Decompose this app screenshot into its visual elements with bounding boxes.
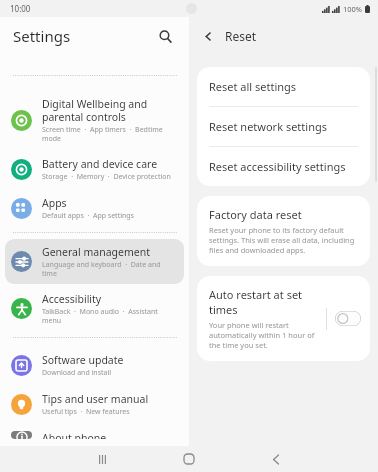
staticText: About phone bbox=[42, 431, 107, 439]
button[interactable]: Digital Wellbeing and parental controls bbox=[5, 91, 184, 149]
staticText: Default apps · App settings bbox=[42, 211, 134, 221]
staticText: Factory data reset bbox=[209, 207, 302, 222]
button[interactable]: Factory data reset bbox=[197, 196, 370, 266]
button[interactable]: Recent apps bbox=[84, 446, 120, 472]
button[interactable]: Back bbox=[197, 25, 219, 47]
staticText: Reset all settings bbox=[209, 79, 297, 94]
staticText: Reset bbox=[225, 28, 257, 44]
staticText: General management bbox=[42, 245, 150, 259]
button[interactable]: Reset all settings bbox=[197, 67, 370, 106]
staticText: Digital Wellbeing and parental controls bbox=[42, 97, 176, 124]
button[interactable]: Software update bbox=[5, 347, 184, 384]
staticText: Download and install bbox=[42, 368, 112, 378]
staticText: Apps bbox=[42, 196, 67, 210]
staticText: 100% bbox=[343, 4, 363, 14]
staticText: Software update bbox=[42, 353, 124, 367]
staticText: Useful tips · New features bbox=[42, 407, 130, 417]
staticText: Language and keyboard · Date and time bbox=[42, 260, 176, 278]
button[interactable]: Battery and device care bbox=[5, 151, 184, 188]
staticText: Settings bbox=[13, 26, 71, 46]
button[interactable]: Back bbox=[258, 446, 294, 472]
staticText: Reset your phone to its factory default … bbox=[209, 225, 358, 255]
staticText: Reset accessibility settings bbox=[209, 159, 346, 174]
staticText: 10:00 bbox=[10, 3, 31, 14]
button[interactable]: Search bbox=[152, 23, 178, 49]
staticText: Screen time · App timers · Bedtime mode bbox=[42, 125, 176, 143]
button[interactable]: Auto restart at set times bbox=[197, 276, 370, 361]
button[interactable]: Tips and user manual bbox=[5, 386, 184, 423]
staticText: Your phone will restart automatically wi… bbox=[209, 320, 320, 350]
staticText: Storage · Memory · Device protection bbox=[42, 172, 171, 182]
staticText: Tips and user manual bbox=[42, 392, 149, 406]
button[interactable]: Apps bbox=[5, 190, 184, 227]
staticText: TalkBack · Mono audio · Assistant menu bbox=[42, 307, 176, 325]
staticText: Reset network settings bbox=[209, 119, 327, 134]
button[interactable]: Reset accessibility settings bbox=[197, 147, 370, 186]
button[interactable]: Auto restart toggle bbox=[335, 311, 361, 326]
button[interactable]: About phone bbox=[5, 425, 184, 445]
staticText: Accessibility bbox=[42, 292, 102, 306]
button[interactable]: Accessibility bbox=[5, 286, 184, 331]
staticText: Battery and device care bbox=[42, 157, 158, 171]
button[interactable]: General management bbox=[5, 239, 184, 284]
staticText: Auto restart at set times bbox=[209, 287, 320, 317]
button[interactable]: Home bbox=[171, 446, 207, 472]
button[interactable]: Reset network settings bbox=[197, 107, 370, 146]
